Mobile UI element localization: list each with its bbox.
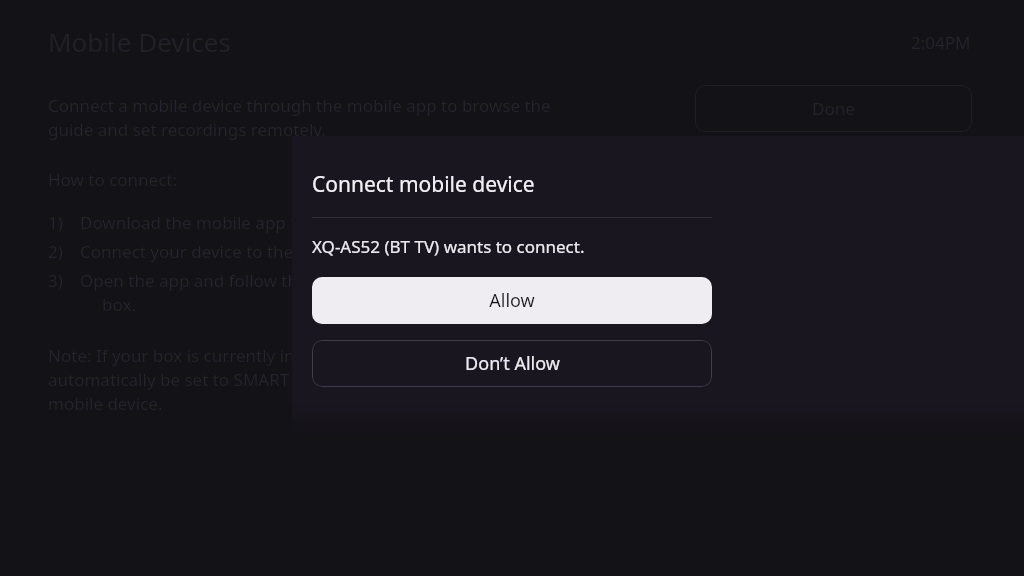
staticText: 2:04PM: [911, 31, 971, 54]
staticText: Connect mobile device: [312, 170, 535, 199]
button[interactable]: Don’t Allow: [312, 340, 712, 387]
staticText: Open the app and follow the instructions…: [80, 269, 620, 316]
staticText: Note: If your box is currently in Energy…: [48, 344, 516, 415]
staticText: 1): [48, 211, 80, 234]
button[interactable]: Allow: [312, 277, 712, 324]
staticText: Don’t Allow: [465, 351, 560, 376]
staticText: Connect your device to the same wifi net…: [80, 240, 620, 263]
staticText: Allow: [489, 288, 535, 313]
button[interactable]: Done: [695, 85, 972, 132]
staticText: Mobile Devices: [48, 24, 231, 59]
staticText: How to connect:: [48, 168, 178, 191]
staticText: Connect a mobile device through the mobi…: [48, 94, 551, 141]
staticText: 2): [48, 240, 80, 263]
staticText: Done: [812, 97, 855, 120]
staticText: 3): [48, 269, 80, 292]
staticText: Download the mobile app from the App Sto…: [80, 211, 620, 234]
staticText: XQ-AS52 (BT TV) wants to connect.: [312, 235, 585, 258]
